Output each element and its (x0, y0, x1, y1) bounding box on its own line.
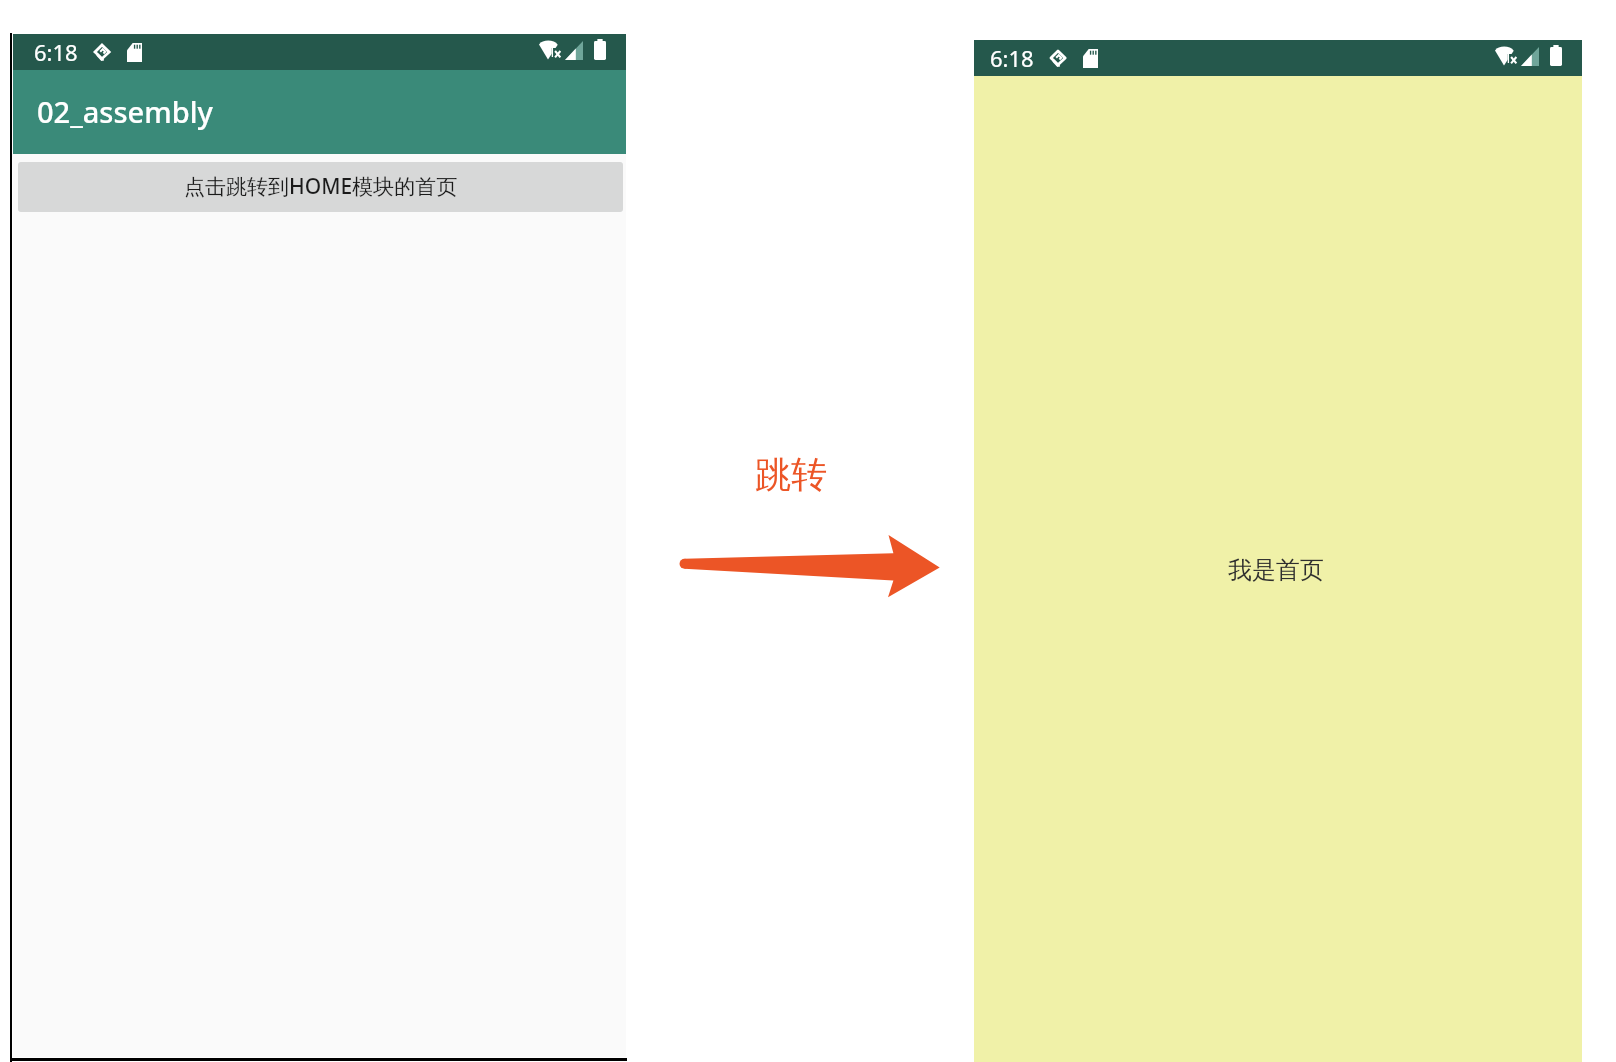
other: Navigate to home page (670, 520, 960, 610)
staticText: 02_assembly (37, 92, 213, 131)
staticText: 跳转 (755, 452, 827, 497)
staticText: 6:18 (990, 43, 1034, 73)
other: Mobile signal (1521, 47, 1539, 66)
other: Wi-Fi disconnected (1495, 46, 1519, 66)
other: Wi-Fi disconnected (539, 40, 563, 60)
other: Battery full (1550, 45, 1562, 66)
other: SD card (127, 43, 142, 62)
other: SD card (1083, 49, 1098, 68)
other: Wireless debugging (1049, 49, 1067, 67)
staticText: 我是首页 (1228, 555, 1324, 585)
button[interactable]: 点击跳转到HOME模块的首页 (18, 162, 623, 212)
staticText: 6:18 (34, 37, 78, 67)
other: Battery full (594, 39, 606, 60)
other: Mobile signal (565, 41, 583, 60)
other: Wireless debugging (93, 43, 111, 61)
staticText: 点击跳转到HOME模块的首页 (184, 172, 458, 201)
